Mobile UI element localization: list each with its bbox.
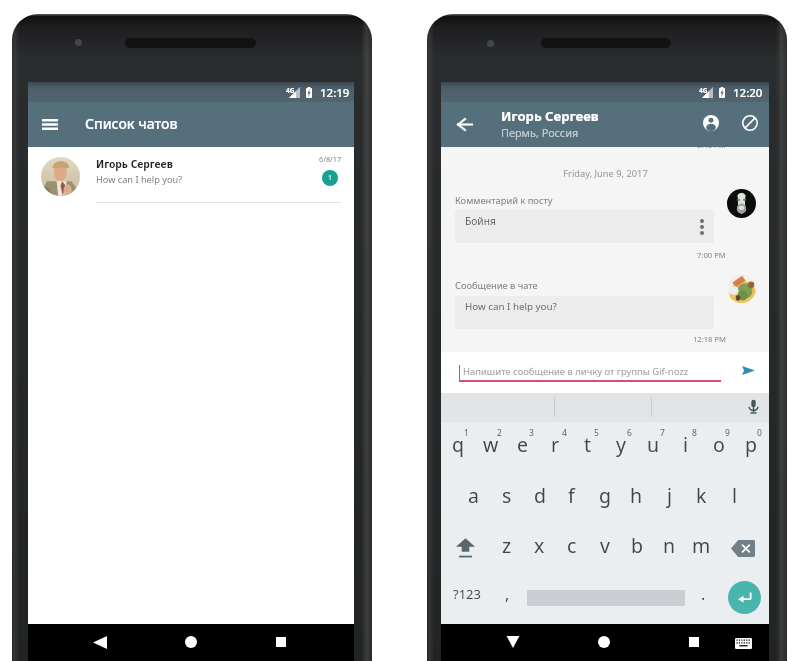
button[interactable]: 4 <box>539 423 572 473</box>
staticText: t <box>584 431 592 458</box>
button[interactable]: Бойня <box>455 210 714 243</box>
staticText: c <box>567 532 577 559</box>
button[interactable]: n <box>653 523 686 573</box>
button[interactable]: z <box>490 523 523 573</box>
button[interactable]: 3 <box>506 423 539 473</box>
button[interactable]: 6 <box>604 423 637 473</box>
staticText: 12:20 <box>733 85 763 101</box>
button[interactable]: v <box>588 523 621 573</box>
staticText: Список чатов <box>85 114 178 133</box>
staticText: 4G <box>699 86 708 95</box>
staticText: h <box>630 482 643 509</box>
button[interactable]: Send message <box>736 358 760 382</box>
button[interactable]: j <box>653 473 686 523</box>
button[interactable]: 5 <box>571 423 604 473</box>
button[interactable]: Open navigation menu <box>30 102 70 147</box>
staticText: g <box>599 482 611 509</box>
button[interactable]: x <box>523 523 556 573</box>
staticText: k <box>696 482 707 509</box>
button[interactable]: How can I help you? <box>455 296 714 329</box>
staticText: j <box>667 482 673 509</box>
staticText: ?123 <box>453 585 481 603</box>
button[interactable]: 7 <box>637 423 670 473</box>
staticText: m <box>692 532 711 559</box>
button[interactable]: 0 <box>734 423 767 473</box>
button[interactable]: g <box>588 473 621 523</box>
staticText: Игорь Сергеев <box>501 107 599 125</box>
button[interactable]: Block contact <box>739 112 761 134</box>
button[interactable]: c <box>555 523 588 573</box>
staticText: e <box>517 431 528 458</box>
staticText: n <box>663 532 676 559</box>
staticText: d <box>534 482 546 509</box>
button[interactable]: ?123 <box>441 573 493 623</box>
button[interactable]: , <box>491 573 523 623</box>
staticText: f <box>568 482 575 509</box>
staticText: 4 <box>562 427 567 439</box>
button[interactable]: 1 <box>441 423 474 473</box>
staticText: 5 <box>594 427 599 439</box>
button[interactable]: . <box>688 573 719 623</box>
staticText: Напишите сообщение в личку от группы Gif… <box>463 365 689 378</box>
staticText: r <box>551 431 560 458</box>
button[interactable]: f <box>555 473 588 523</box>
button[interactable]: l <box>718 473 751 523</box>
staticText: Friday, June 9, 2017 <box>563 167 648 180</box>
button[interactable]: Back <box>87 630 112 655</box>
button[interactable]: k <box>685 473 718 523</box>
button[interactable]: h <box>620 473 653 523</box>
staticText: v <box>600 532 610 559</box>
button[interactable]: Voice input <box>742 395 764 417</box>
staticText: y <box>616 431 626 458</box>
button[interactable]: b <box>620 523 653 573</box>
staticText: q <box>452 431 464 458</box>
button[interactable]: m <box>685 523 718 573</box>
button[interactable]: Back <box>500 630 525 655</box>
button[interactable]: Игорь Сергеев <box>28 147 354 204</box>
button[interactable]: Contact profile <box>700 112 722 134</box>
button[interactable]: Home <box>598 636 610 648</box>
button[interactable]: Backspace <box>718 523 767 573</box>
staticText: 6 <box>627 427 632 439</box>
staticText: 7 <box>660 427 665 439</box>
staticText: z <box>502 532 512 559</box>
staticText: 6/8/17 <box>319 154 342 164</box>
staticText: u <box>647 431 660 458</box>
button[interactable]: s <box>490 473 523 523</box>
staticText: . <box>701 583 706 605</box>
staticText: How can I help you? <box>96 173 183 186</box>
button[interactable]: d <box>523 473 556 523</box>
button[interactable]: Navigate back <box>442 102 488 147</box>
staticText: 8 <box>692 427 697 439</box>
staticText: 2 <box>497 427 502 439</box>
button[interactable]: 9 <box>702 423 735 473</box>
button[interactable]: 8 <box>669 423 702 473</box>
staticText: 7:00 PM <box>697 250 726 260</box>
staticText: , <box>505 583 510 605</box>
staticText: 0 <box>757 427 762 439</box>
staticText: How can I help you? <box>465 300 557 313</box>
staticText: w <box>483 431 499 458</box>
button[interactable]: Enter <box>728 581 761 614</box>
button[interactable]: Hide keyboard <box>735 638 752 649</box>
staticText: a <box>468 482 479 509</box>
staticText: 3 <box>529 427 534 439</box>
staticText: 1 <box>328 173 333 183</box>
staticText: Комментарий к посту <box>455 194 553 207</box>
staticText: 1 <box>464 427 469 439</box>
button[interactable]: Shift <box>441 523 490 573</box>
button[interactable]: 2 <box>474 423 507 473</box>
staticText: 12:18 PM <box>693 334 726 344</box>
staticText: 12:19 <box>320 85 350 101</box>
button[interactable]: a <box>457 473 490 523</box>
staticText: i <box>683 431 689 458</box>
staticText: p <box>745 431 757 458</box>
staticText: x <box>534 532 545 559</box>
button[interactable]: Message options <box>691 216 713 238</box>
staticText: s <box>502 482 512 509</box>
button[interactable]: Home <box>185 636 197 648</box>
staticText: 9 <box>725 427 730 439</box>
